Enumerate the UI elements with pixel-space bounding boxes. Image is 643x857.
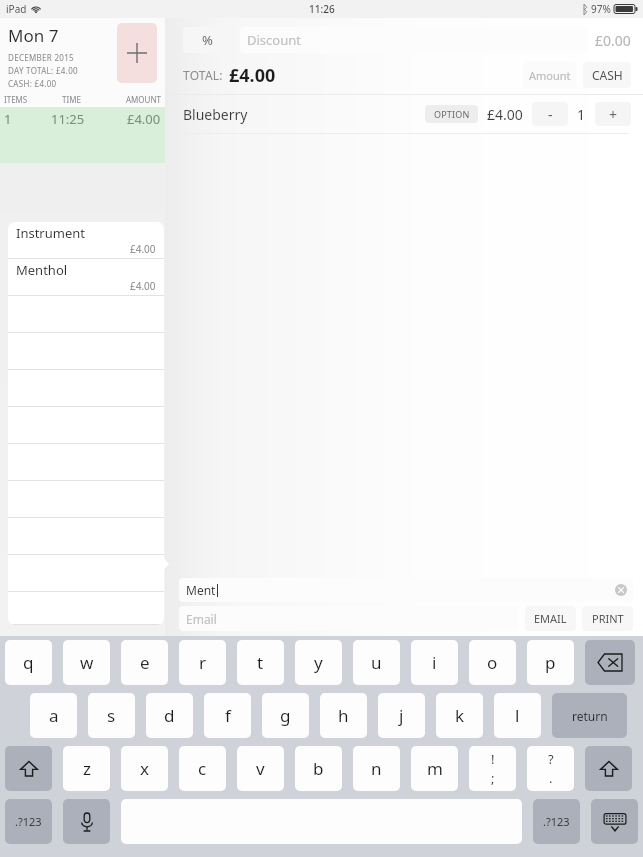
staticText: u <box>371 651 382 674</box>
staticText: r <box>199 651 207 674</box>
button[interactable]: return <box>552 693 627 738</box>
button[interactable]: PRINT <box>582 606 633 631</box>
staticText: £4.00 <box>229 63 276 88</box>
button[interactable] <box>8 407 164 444</box>
button[interactable]: q <box>5 640 52 685</box>
button[interactable]: r <box>179 640 226 685</box>
staticText: 11:25 <box>51 110 85 128</box>
button[interactable] <box>8 370 164 407</box>
staticText: e <box>140 651 150 674</box>
button[interactable]: w <box>63 640 110 685</box>
staticText: Menthol <box>16 261 68 279</box>
button[interactable]: Instrument <box>8 222 164 259</box>
button[interactable]: Blueberry <box>165 95 643 134</box>
button[interactable]: c <box>179 746 226 791</box>
staticText: Blueberry <box>183 105 248 124</box>
button[interactable]: o <box>469 640 516 685</box>
button[interactable]: Ment <box>179 578 633 602</box>
button[interactable]: Increase quantity <box>595 102 631 126</box>
button[interactable]: Email <box>179 606 518 631</box>
staticText: q <box>23 651 34 674</box>
button[interactable]: d <box>146 693 193 738</box>
button[interactable]: Dictation <box>63 799 110 844</box>
staticText: DAY TOTAL: £4.00 <box>8 65 78 76</box>
button[interactable]: Discount <box>240 27 587 53</box>
button[interactable]: j <box>378 693 425 738</box>
staticText: b <box>313 757 324 780</box>
staticText: . <box>549 769 553 787</box>
staticText: return <box>572 708 608 724</box>
button[interactable]: v <box>237 746 284 791</box>
staticText: c <box>198 757 207 780</box>
staticText: Email <box>186 611 217 627</box>
button[interactable]: Clear text <box>615 584 627 596</box>
staticText: f <box>225 704 231 727</box>
button[interactable]: Add transaction <box>117 23 157 83</box>
button[interactable]: x <box>121 746 168 791</box>
staticText: £4.00 <box>130 279 156 293</box>
staticText: £4.00 <box>127 110 161 128</box>
staticText: z <box>83 757 91 780</box>
staticText: £4.00 <box>487 105 523 124</box>
button[interactable]: f <box>204 693 251 738</box>
button[interactable]: e <box>121 640 168 685</box>
staticText: + <box>609 105 618 124</box>
button[interactable]: l <box>494 693 541 738</box>
button[interactable]: u <box>353 640 400 685</box>
button[interactable]: Decrease quantity <box>532 102 568 126</box>
staticText: m <box>427 757 443 780</box>
button[interactable]: i <box>411 640 458 685</box>
button[interactable] <box>8 555 164 592</box>
staticText: p <box>545 651 556 674</box>
staticText: iPad <box>6 2 27 16</box>
button[interactable]: p <box>527 640 574 685</box>
button[interactable]: g <box>262 693 309 738</box>
button[interactable]: y <box>295 640 342 685</box>
button[interactable]: % <box>183 27 231 53</box>
staticText: ? <box>548 750 554 768</box>
button[interactable] <box>8 296 164 333</box>
button[interactable]: EMAIL <box>525 606 576 631</box>
button[interactable]: 1 <box>0 107 165 163</box>
button[interactable]: CASH <box>583 62 631 88</box>
staticText: n <box>371 757 382 780</box>
staticText: i <box>432 651 437 674</box>
staticText: y <box>314 651 323 674</box>
button[interactable]: n <box>353 746 400 791</box>
button[interactable] <box>8 518 164 555</box>
button[interactable]: Menthol <box>8 259 164 296</box>
staticText: OPTION <box>434 108 470 120</box>
button[interactable] <box>8 592 164 625</box>
button[interactable]: Amount <box>523 62 576 88</box>
button[interactable]: k <box>436 693 483 738</box>
button[interactable]: m <box>411 746 458 791</box>
button[interactable]: Shift <box>585 746 632 791</box>
button[interactable]: z <box>63 746 110 791</box>
button[interactable]: ! <box>469 746 516 791</box>
button[interactable]: ? <box>527 746 574 791</box>
button[interactable]: .?123 <box>5 799 52 844</box>
staticText: Instrument <box>16 224 85 242</box>
button[interactable]: Shift <box>5 746 52 791</box>
staticText: 11:26 <box>309 2 335 16</box>
staticText: t <box>257 651 264 674</box>
staticText: Mon 7 <box>8 24 59 47</box>
staticText: AMOUNT <box>126 94 161 105</box>
button[interactable] <box>8 333 164 370</box>
button[interactable]: a <box>30 693 77 738</box>
button[interactable]: h <box>320 693 367 738</box>
button[interactable]: OPTION <box>425 105 478 123</box>
button[interactable]: s <box>88 693 135 738</box>
staticText: Discount <box>247 31 301 49</box>
button[interactable]: Backspace <box>585 640 635 685</box>
button[interactable]: .?123 <box>533 799 580 844</box>
button[interactable] <box>8 444 164 481</box>
button[interactable]: Hide keyboard <box>591 799 638 844</box>
button[interactable] <box>8 481 164 518</box>
button[interactable]: t <box>237 640 284 685</box>
button[interactable]: b <box>295 746 342 791</box>
staticText: PRINT <box>592 611 624 626</box>
staticText: 1 <box>4 110 12 128</box>
staticText: Ment <box>186 582 216 598</box>
